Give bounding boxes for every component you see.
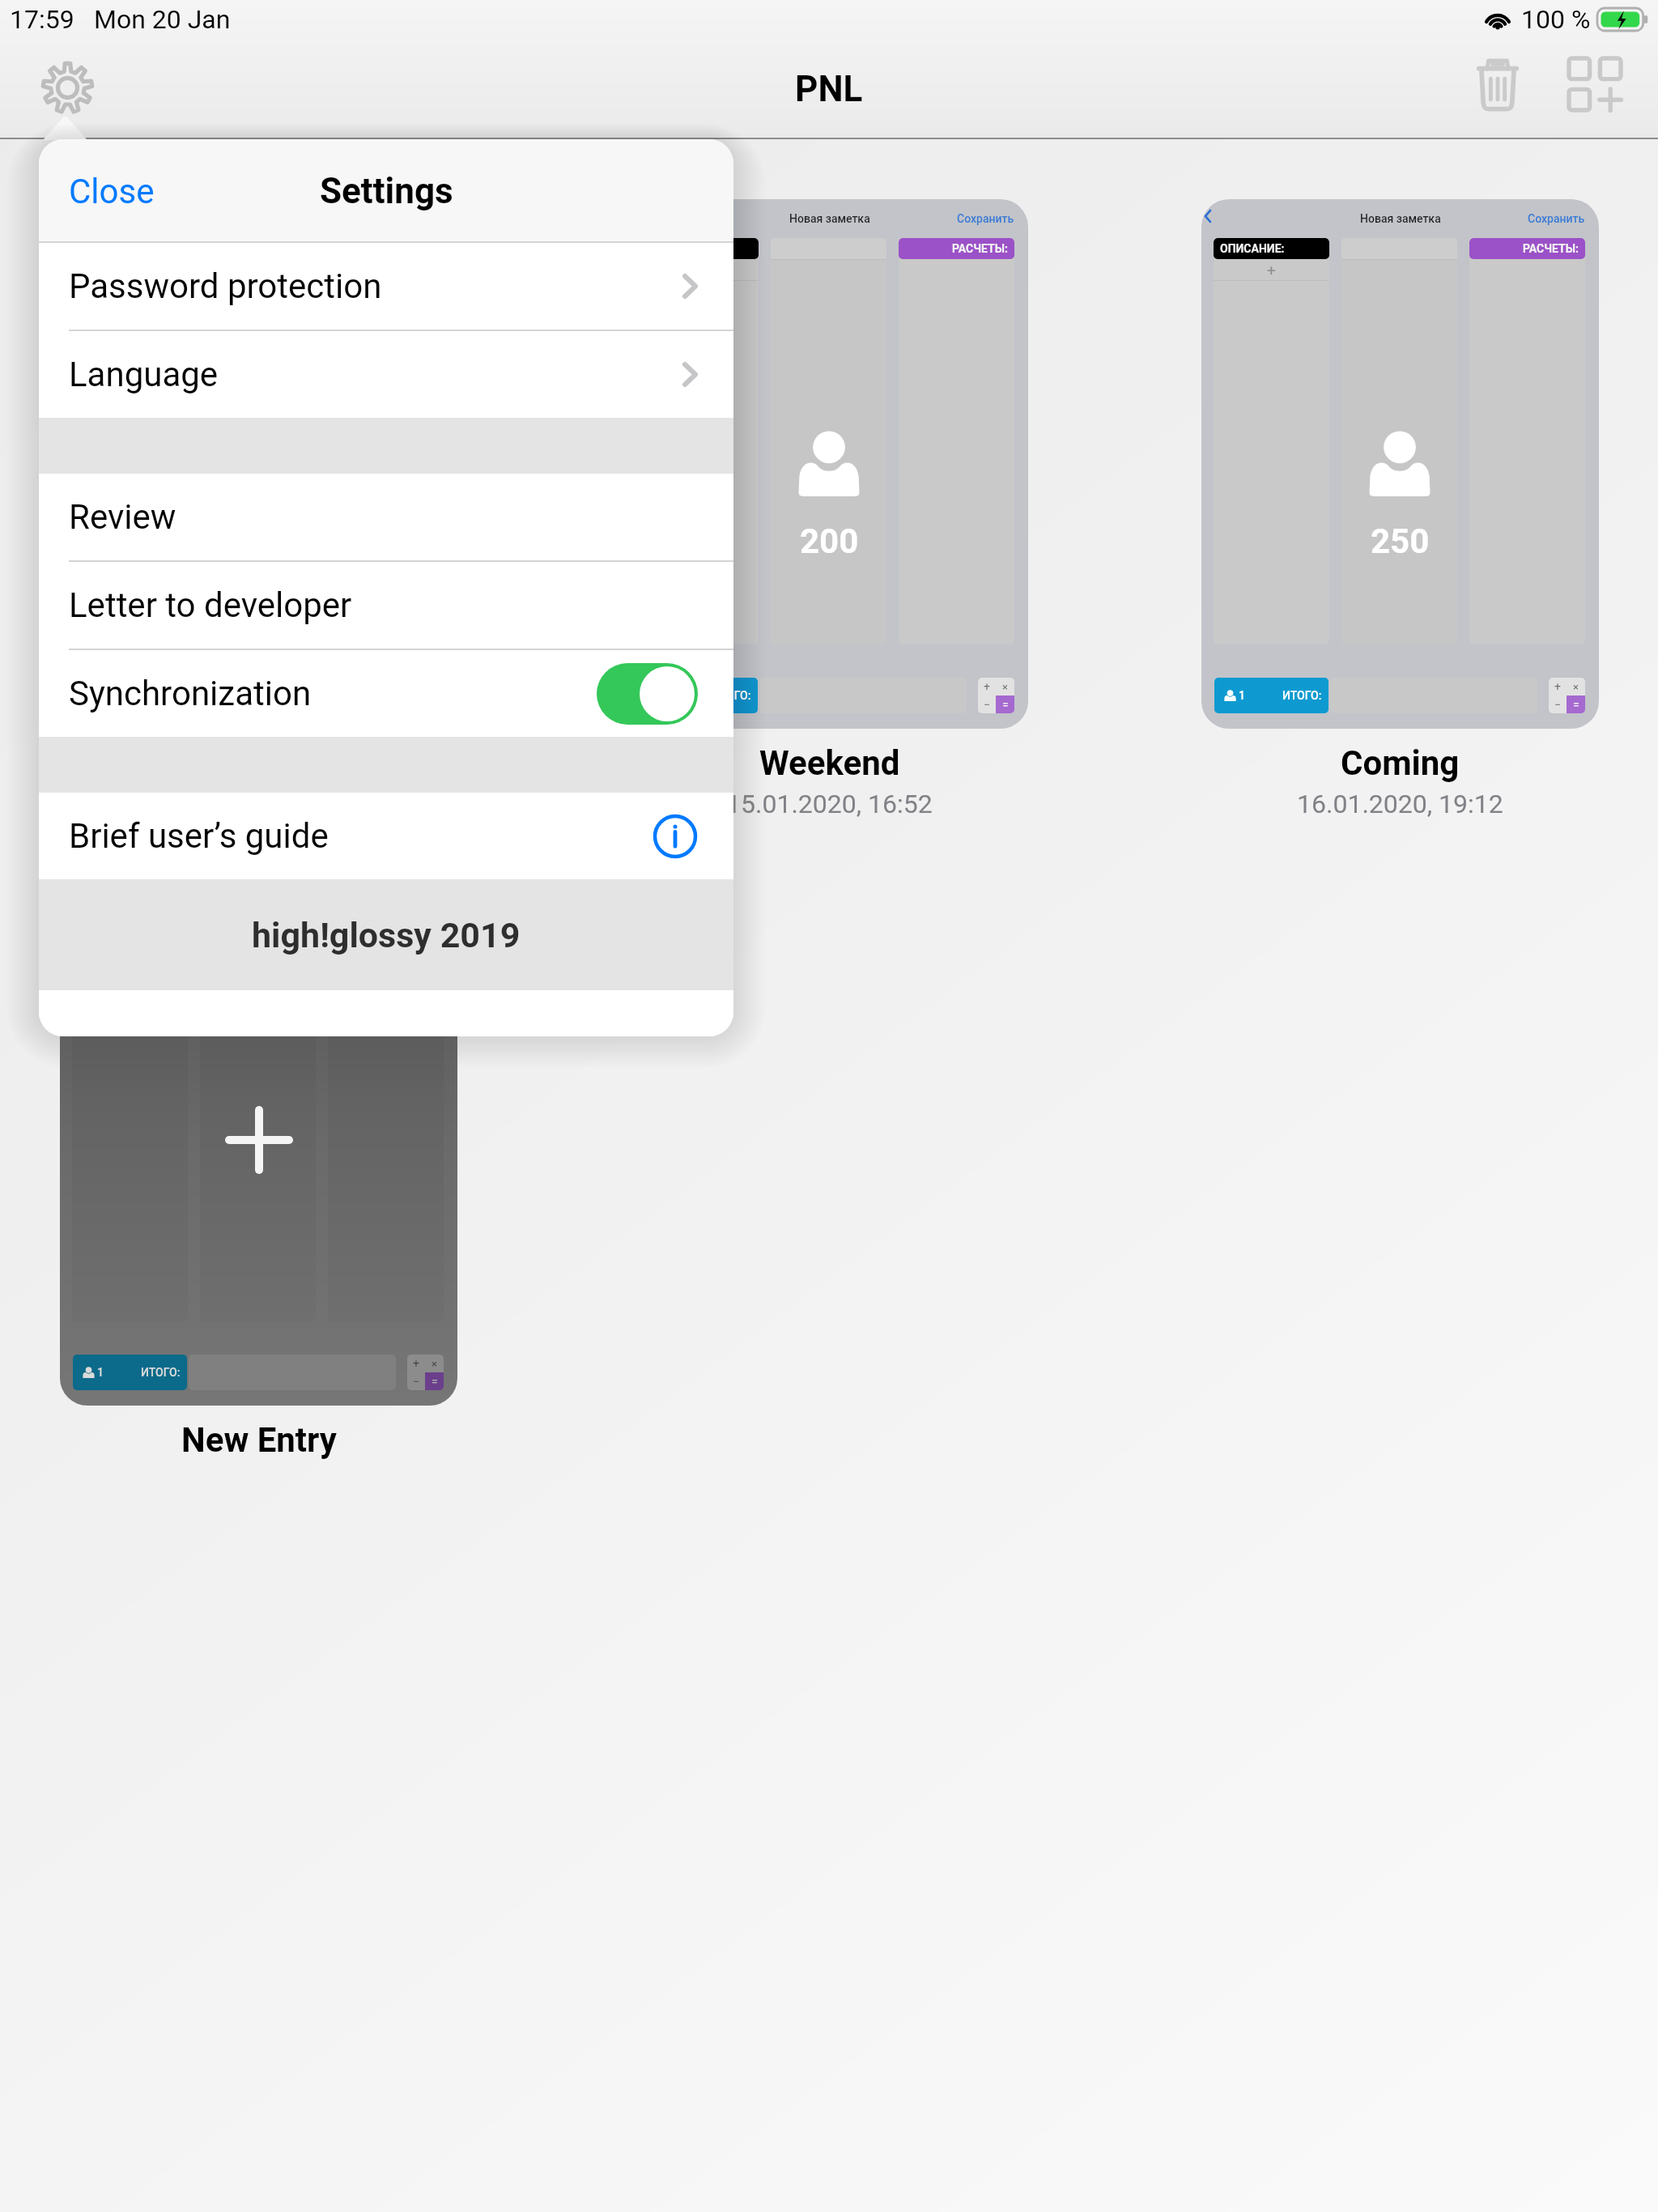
button[interactable]: Close [39,159,179,224]
staticText: + [413,1357,419,1370]
staticText: Settings [320,170,453,212]
staticText: ИТОГО: [141,1366,181,1379]
staticText: New Entry [181,1420,337,1460]
staticText: ОПИСАНИЕ: [649,242,714,255]
button[interactable]: Новая заметка [1201,199,1599,729]
staticText: = [1002,698,1009,711]
staticText: − [984,698,991,711]
staticText: high!glossy 2019 [252,915,521,955]
staticText: Сохранить [957,212,1014,225]
staticText: 200 [800,521,859,561]
staticText: − [413,1375,420,1388]
staticText: Brief user’s guide [69,816,329,856]
staticText: PNL [795,68,863,110]
staticText: + [984,680,990,693]
staticText: = [432,1375,438,1388]
staticText: 100 % [1521,4,1591,35]
staticText: Review [69,497,176,537]
staticText: РАСЧЕТЫ: [952,242,1008,255]
staticText: 15.01.2020, 16:52 [726,789,933,819]
staticText: 250 [1371,521,1430,561]
staticText: Close [69,172,155,211]
staticText: Language [69,355,219,394]
staticText: = [1573,698,1579,711]
staticText: ИТОГО: [1282,689,1322,702]
staticText: Mon 20 Jan [94,4,231,35]
staticText: 16.01.2020, 19:12 [1297,789,1503,819]
staticText: Weekend [759,743,900,783]
staticText: × [1573,681,1579,693]
staticText: + [1554,680,1561,693]
button[interactable]: Synchronization toggle [597,663,698,725]
staticText: ИТОГО: [712,689,751,702]
button[interactable]: Add entry [1554,44,1635,125]
button[interactable]: Password protection [39,243,733,330]
staticText: Letter to developer [69,585,352,625]
staticText: + [1267,261,1276,279]
button[interactable]: Delete [1457,44,1538,125]
staticText: Новая заметка [1360,212,1441,225]
staticText: 1 [97,1366,104,1379]
button[interactable]: Новая заметка [631,199,1028,729]
staticText: × [1002,681,1008,693]
button[interactable]: Language [39,331,733,418]
button[interactable]: Review [39,474,733,560]
staticText: Coming [1341,743,1460,783]
staticText: РАСЧЕТЫ: [1523,242,1579,255]
button[interactable]: Letter to developer [39,562,733,649]
staticText: Сохранить [1528,212,1585,225]
staticText: ОПИСАНИЕ: [1220,242,1285,255]
staticText: × [432,1358,437,1370]
staticText: 1 [1239,689,1245,702]
staticText: 17:59 [10,4,74,35]
button[interactable]: Synchronization [39,650,733,737]
staticText: − [1554,698,1562,711]
button[interactable]: New Entry [60,876,457,1406]
staticText: Synchronization [69,674,312,713]
button[interactable]: Settings [23,44,112,132]
staticText: Новая заметка [789,212,870,225]
button[interactable]: Brief user’s guide [39,793,733,879]
staticText: Password protection [69,266,382,306]
